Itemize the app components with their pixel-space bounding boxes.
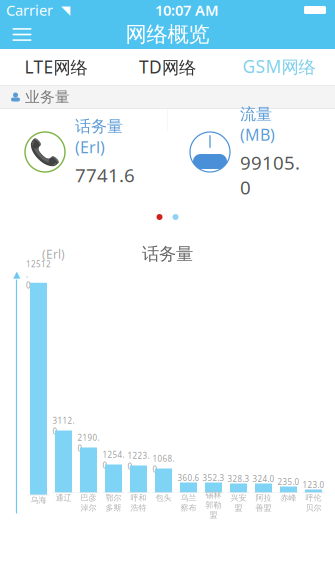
- staticText: 鄂尔: [105, 493, 121, 503]
- staticText: 兴安: [230, 493, 246, 503]
- staticText: 360.6: [177, 473, 199, 483]
- staticText: 淖尔: [80, 503, 96, 513]
- staticText: 乌海: [30, 495, 46, 505]
- staticText: 12512. 0: [26, 259, 51, 291]
- staticText: 贝尔: [305, 503, 321, 513]
- staticText: Carrier: [6, 0, 53, 20]
- staticText: 浩特: [130, 503, 146, 513]
- button[interactable]: 流量(MB): [167, 109, 335, 195]
- staticText: 1223.0: [127, 450, 149, 472]
- staticText: 锡林: [205, 490, 221, 500]
- staticText: GSM网络: [243, 55, 316, 78]
- staticText: 2190.0: [77, 432, 99, 454]
- staticText: 99105.0: [240, 150, 300, 200]
- staticText: 324.0: [252, 474, 274, 484]
- staticText: 1254.0: [102, 449, 124, 471]
- staticText: 业务量: [25, 88, 70, 106]
- button[interactable]: GSM网络: [223, 49, 335, 85]
- staticText: 乌兰: [180, 493, 196, 503]
- staticText: ▲: [13, 269, 20, 280]
- staticText: 话务量(Erl): [75, 117, 123, 158]
- staticText: 流量(MB): [240, 104, 275, 145]
- staticText: 3112.0: [52, 415, 74, 437]
- button[interactable]: Menu: [0, 19, 44, 49]
- staticText: 呼和: [130, 493, 146, 503]
- staticText: 察布: [180, 503, 196, 513]
- staticText: 123.0: [302, 480, 324, 490]
- staticText: 352.3: [202, 473, 224, 483]
- staticText: 盟: [234, 503, 242, 513]
- staticText: 赤峰: [280, 493, 296, 503]
- staticText: 1068.0: [152, 453, 174, 475]
- staticText: TD网络: [139, 55, 196, 78]
- staticText: 善盟: [255, 503, 271, 513]
- staticText: 328.3: [227, 474, 249, 484]
- button[interactable]: 📞: [0, 109, 167, 195]
- staticText: 多斯: [105, 503, 121, 513]
- staticText: 通辽: [55, 493, 71, 503]
- button[interactable]: LTE网络: [0, 49, 112, 85]
- staticText: 网络概览: [125, 21, 209, 48]
- staticText: 包头: [155, 493, 171, 503]
- staticText: 235.0: [277, 477, 299, 487]
- staticText: 阿拉: [255, 493, 271, 503]
- staticText: LTE网络: [24, 55, 87, 78]
- staticText: 7741.6: [75, 163, 135, 187]
- staticText: 郭勒: [205, 500, 221, 510]
- staticText: 盟: [209, 510, 217, 520]
- staticText: 呼伦: [305, 493, 321, 503]
- staticText: 巴彦: [80, 493, 96, 503]
- staticText: 话务量: [142, 243, 193, 265]
- staticText: (Erl): [42, 246, 65, 262]
- staticText: 10:07 AM: [155, 0, 219, 20]
- staticText: ◥: [61, 3, 70, 17]
- button[interactable]: TD网络: [112, 49, 223, 85]
- staticText: 📞: [29, 137, 61, 166]
